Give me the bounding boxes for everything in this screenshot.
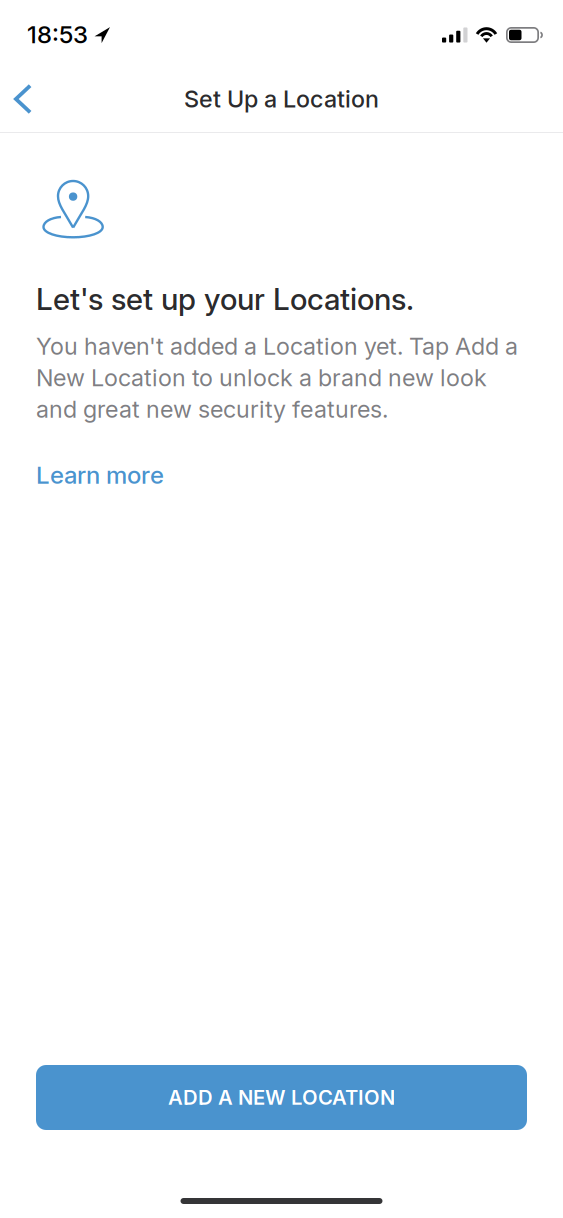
- button[interactable]: ADD A NEW LOCATION: [36, 1065, 527, 1130]
- staticText: 18:53: [27, 20, 88, 49]
- staticText: Set Up a Location: [184, 85, 379, 113]
- staticText: Let's set up your Locations.: [36, 281, 414, 317]
- button[interactable]: Learn more: [36, 451, 164, 498]
- button[interactable]: Back: [0, 68, 56, 130]
- staticText: ADD A NEW LOCATION: [168, 1085, 395, 1110]
- staticText: Learn more: [36, 460, 164, 489]
- staticText: You haven't added a Location yet. Tap Ad…: [36, 332, 518, 423]
